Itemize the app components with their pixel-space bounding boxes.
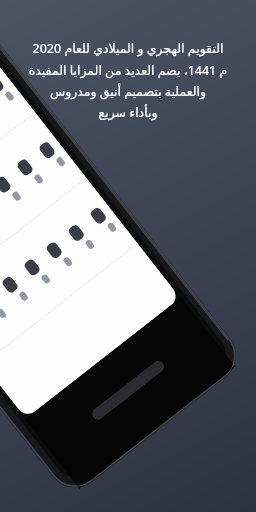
other: Calendar app phone preview	[0, 0, 256, 512]
staticText: التقويم الهجري و الميلادي للعام 2020 م 1…	[8, 40, 248, 120]
button[interactable]: التقويم الهجري و الميلادي للعام 2020 م 1…	[8, 40, 248, 120]
